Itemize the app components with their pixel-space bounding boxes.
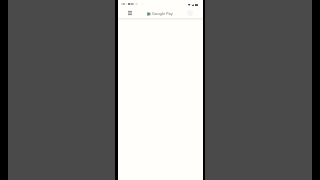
button[interactable]: Menu — [125, 8, 135, 18]
button[interactable]: Account — [187, 10, 193, 16]
staticText: Google Pay — [152, 11, 173, 16]
